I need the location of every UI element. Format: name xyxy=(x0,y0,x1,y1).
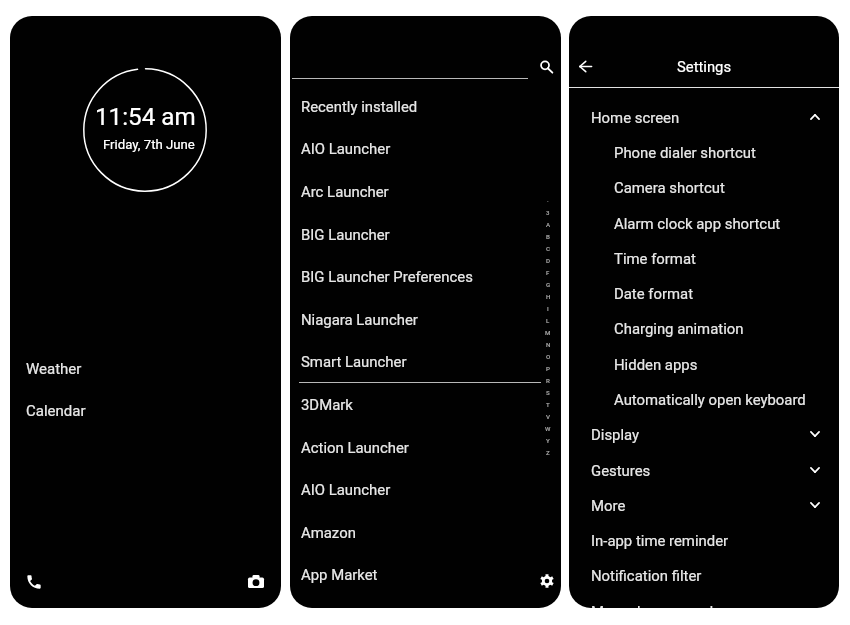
button[interactable]: Time format xyxy=(569,241,839,275)
button[interactable]: Settings xyxy=(533,567,561,595)
button[interactable]: Smart Launcher xyxy=(290,340,561,382)
staticText: Z xyxy=(546,449,550,456)
staticText: C xyxy=(546,245,551,252)
staticText: Hidden apps xyxy=(614,356,698,373)
staticText: Charging animation xyxy=(614,320,744,337)
staticText: App Market xyxy=(301,566,378,583)
staticText: D xyxy=(546,257,551,264)
button[interactable]: BIG Launcher xyxy=(290,213,561,255)
staticText: Calendar xyxy=(26,402,86,420)
button[interactable]: Automatically open keyboard xyxy=(569,382,839,416)
staticText: In-app time reminder xyxy=(591,532,729,549)
staticText: Home screen xyxy=(591,109,680,126)
staticText: G xyxy=(546,281,551,288)
button[interactable]: Date format xyxy=(569,276,839,310)
button[interactable]: Camera xyxy=(242,569,270,597)
button[interactable]: Camera shortcut xyxy=(569,170,839,204)
staticText: · xyxy=(547,197,549,204)
staticText: Friday, 7th June xyxy=(103,137,195,152)
button[interactable]: Search xyxy=(532,52,560,80)
button[interactable]: AIO Launcher xyxy=(290,468,561,510)
button[interactable]: Weather xyxy=(10,352,130,385)
staticText: More xyxy=(591,497,626,514)
button[interactable]: Calendar xyxy=(10,394,130,427)
staticText: Automatically open keyboard xyxy=(614,391,806,408)
staticText: 3DMark xyxy=(301,396,353,413)
button[interactable]: More xyxy=(569,488,839,522)
button[interactable]: In-app time reminder xyxy=(569,523,839,557)
button[interactable]: Display xyxy=(569,417,839,451)
staticText: Notification filter xyxy=(591,567,702,584)
staticText: Smart Launcher xyxy=(301,353,407,370)
staticText: V xyxy=(546,413,551,420)
staticText: Monochrome mode xyxy=(591,603,722,608)
button[interactable]: Hidden apps xyxy=(569,347,839,381)
staticText: BIG Launcher xyxy=(301,226,390,243)
staticText: Camera shortcut xyxy=(614,179,725,196)
button[interactable]: Phone dialer shortcut xyxy=(569,135,839,169)
staticText: Amazon xyxy=(301,524,356,541)
staticText: Phone dialer shortcut xyxy=(614,144,756,161)
staticText: Date format xyxy=(614,285,694,302)
staticText: O xyxy=(546,353,551,360)
button[interactable]: 3DMark xyxy=(290,383,561,425)
staticText: Settings xyxy=(677,58,732,75)
button[interactable]: App Market xyxy=(290,553,561,595)
button[interactable]: Amazon xyxy=(290,511,561,553)
button[interactable]: AIO Launcher xyxy=(290,127,561,169)
staticText: L xyxy=(546,317,550,324)
staticText: S xyxy=(546,389,550,396)
button[interactable]: Monochrome mode xyxy=(569,594,839,608)
staticText: AIO Launcher xyxy=(301,140,391,157)
button[interactable]: Notification filter xyxy=(569,558,839,592)
staticText: Gestures xyxy=(591,462,651,479)
staticText: BIG Launcher Preferences xyxy=(301,268,473,285)
staticText: Time format xyxy=(614,250,696,267)
button[interactable]: BIG Launcher Preferences xyxy=(290,255,561,297)
staticText: A xyxy=(546,221,551,228)
staticText: 3 xyxy=(546,209,550,216)
staticText: Niagara Launcher xyxy=(301,311,418,328)
staticText: B xyxy=(546,233,550,240)
staticText: Display xyxy=(591,426,640,443)
staticText: Alarm clock app shortcut xyxy=(614,215,781,232)
staticText: Arc Launcher xyxy=(301,183,389,200)
button[interactable]: Gestures xyxy=(569,453,839,487)
staticText: R xyxy=(546,377,550,384)
staticText: AIO Launcher xyxy=(301,481,391,498)
staticText: H xyxy=(546,293,551,300)
staticText: 11:54 am xyxy=(95,103,196,131)
button[interactable]: Home screen xyxy=(569,100,839,134)
button[interactable]: Alarm clock app shortcut xyxy=(569,206,839,240)
staticText: I xyxy=(547,305,549,312)
staticText: W xyxy=(545,425,551,432)
staticText: Action Launcher xyxy=(301,439,409,456)
button[interactable]: Action Launcher xyxy=(290,426,561,468)
staticText: M xyxy=(545,329,551,336)
button[interactable]: Niagara Launcher xyxy=(290,298,561,340)
button[interactable]: Arc Launcher xyxy=(290,170,561,212)
staticText: Weather xyxy=(26,360,82,378)
staticText: F xyxy=(546,269,550,276)
staticText: Recently installed xyxy=(301,98,418,115)
staticText: T xyxy=(546,401,550,408)
staticText: Y xyxy=(546,437,550,444)
button[interactable]: Phone xyxy=(20,568,48,596)
staticText: N xyxy=(546,341,551,348)
button[interactable]: Back xyxy=(571,52,600,81)
staticText: P xyxy=(546,365,550,372)
button[interactable]: Recently installed xyxy=(290,85,561,127)
button[interactable]: Charging animation xyxy=(569,311,839,345)
